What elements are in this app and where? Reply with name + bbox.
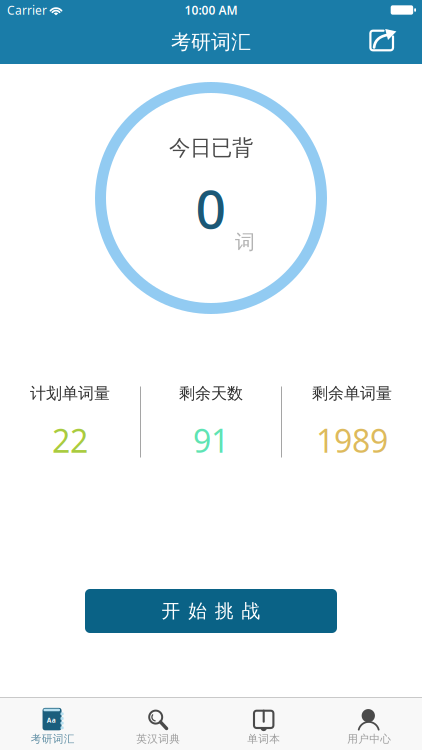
button[interactable]: 用户中心 [316,698,422,750]
button[interactable]: 开 始 挑 战 [85,589,337,633]
staticText: 剩余单词量 [312,383,392,403]
staticText: 开 始 挑 战 [162,599,260,622]
staticText: 计划单词量 [30,383,110,403]
staticText: 单词本 [247,732,280,745]
staticText: 剩余天数 [179,383,243,403]
staticText: Aa [47,716,56,725]
staticText: 22 [52,419,88,462]
staticText: 用户中心 [347,732,391,745]
staticText: 91 [193,419,229,462]
button[interactable] [368,20,422,64]
staticText: 词 [235,230,255,254]
button[interactable]: Aa [0,698,105,750]
staticText: 10:00 AM [184,2,237,18]
staticText: 考研词汇 [171,30,251,54]
button[interactable]: 英汉词典 [105,698,211,750]
staticText: 今日已背 [169,135,253,161]
staticText: 考研词汇 [31,732,75,745]
staticText: 0 [195,173,226,243]
staticText: Carrier [7,2,47,18]
staticText: 英汉词典 [136,732,180,745]
staticText: 1989 [316,419,388,462]
button[interactable]: 单词本 [211,698,316,750]
